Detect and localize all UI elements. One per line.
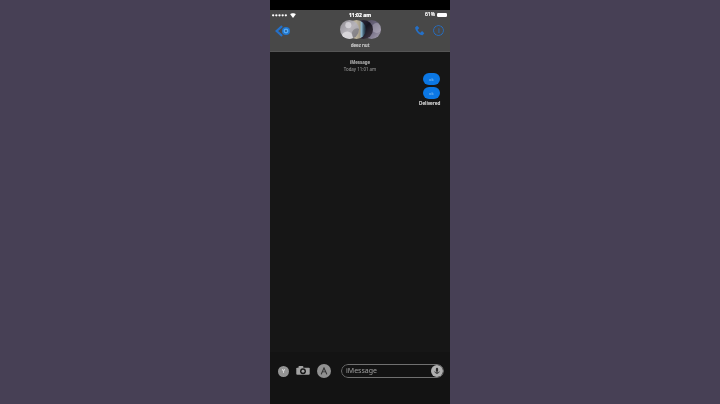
staticText: 61% [425,11,435,18]
staticText: Delivered [419,100,441,106]
staticText: iMessage [346,366,377,376]
button[interactable]: App Store [317,364,331,378]
button[interactable]: Details [431,23,445,37]
staticText: i [438,26,440,36]
staticText: deez nut [270,42,450,48]
button[interactable]: Call [412,23,426,37]
staticText: Today 11:01 am [270,66,450,72]
button[interactable]: iMessage [341,364,444,378]
button[interactable]: ok [423,73,440,85]
staticText: Y [282,368,285,375]
button[interactable]: Back [273,22,291,39]
staticText: ok [429,77,434,82]
staticText: 11:02 am [270,12,450,19]
staticText: ok [429,91,434,96]
staticText: iMessage [270,59,450,65]
button[interactable]: ok [423,87,440,99]
button[interactable]: Dictate [431,365,443,377]
button[interactable]: Camera [296,364,310,378]
button[interactable]: Apps [278,366,289,377]
